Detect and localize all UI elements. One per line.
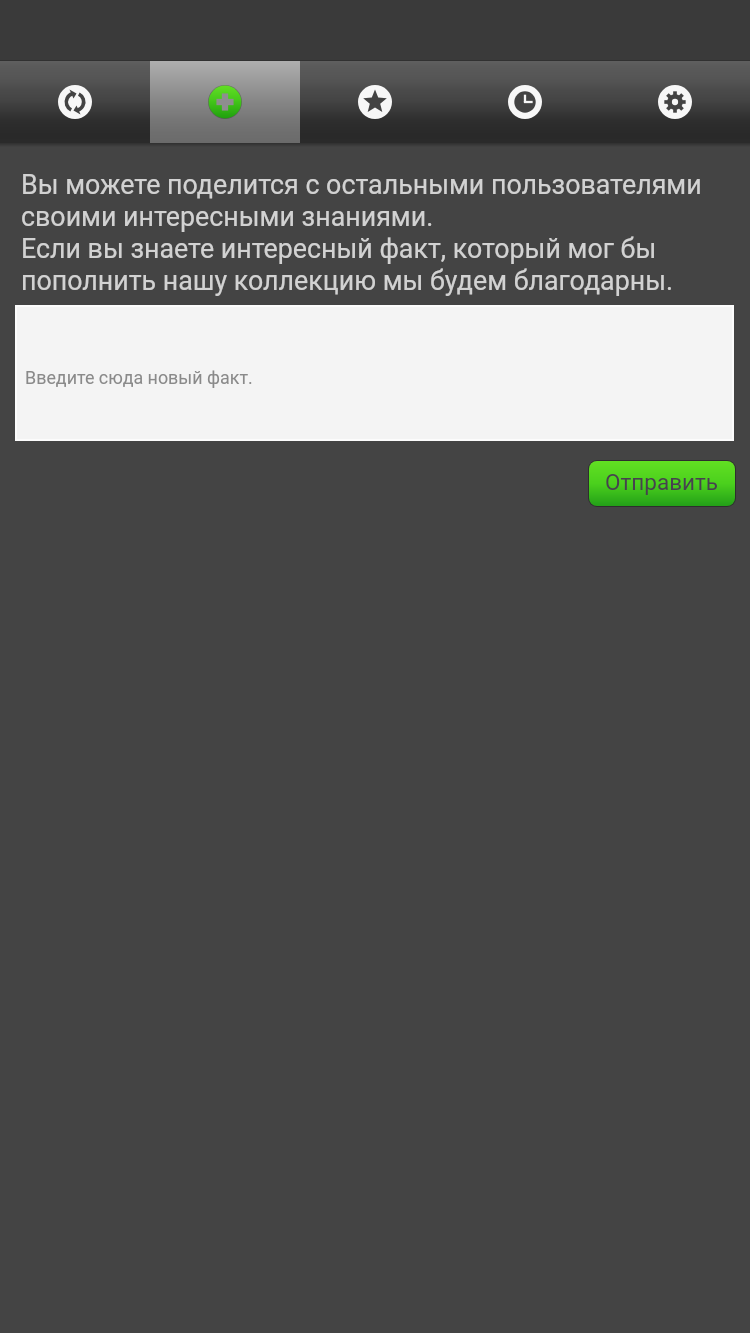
button[interactable]: Settings [600, 61, 750, 143]
button[interactable]: Refresh [0, 61, 150, 143]
button[interactable]: Отправить [589, 461, 735, 506]
button[interactable]: Favorites [300, 61, 450, 143]
button[interactable]: Введите сюда новый факт. [17, 307, 732, 439]
button[interactable]: History [450, 61, 600, 143]
staticText: Вы можете поделится с остальными пользов… [21, 169, 734, 297]
staticText: Отправить [605, 469, 719, 495]
button[interactable]: Add new fact [150, 61, 300, 143]
staticText: Введите сюда новый факт. [25, 367, 253, 388]
